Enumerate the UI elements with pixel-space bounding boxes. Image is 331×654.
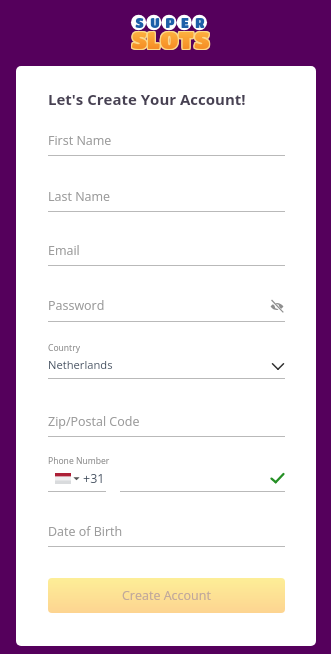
staticText: Email — [48, 242, 80, 259]
staticText: Country — [48, 342, 81, 354]
staticText: SLOTS — [131, 25, 210, 52]
staticText: P — [165, 15, 175, 30]
staticText: First Name — [48, 132, 112, 149]
staticText: Zip/Postal Code — [48, 413, 140, 430]
staticText: SLOTS — [132, 27, 211, 54]
staticText: SLOTS — [130, 25, 209, 52]
button[interactable]: Email — [48, 240, 285, 266]
staticText: SLOTS — [132, 26, 211, 53]
button[interactable]: Create Account — [48, 578, 285, 613]
staticText: SLOTS — [131, 26, 210, 53]
staticText: R — [195, 15, 205, 30]
staticText: Let's Create Your Account! — [48, 89, 246, 109]
button[interactable]: Country — [48, 342, 285, 379]
staticText: Netherlands — [48, 357, 113, 372]
staticText: S — [135, 15, 144, 30]
staticText: SLOTS — [130, 27, 209, 54]
staticText: SLOTS — [130, 26, 209, 53]
button[interactable]: First Name — [48, 130, 285, 156]
button[interactable]: Last Name — [48, 186, 285, 212]
staticText: U — [150, 15, 160, 30]
staticText: +31 — [83, 470, 105, 487]
staticText: Date of Birth — [48, 523, 123, 540]
other: Show password — [270, 300, 284, 312]
button[interactable]: Date of Birth — [48, 521, 285, 547]
staticText: SLOTS — [131, 27, 210, 54]
staticText: SLOTS — [132, 25, 211, 52]
staticText: E — [181, 15, 189, 30]
staticText: Create Account — [122, 587, 211, 604]
button[interactable]: Password — [48, 294, 285, 322]
button[interactable]: Zip/Postal Code — [48, 411, 285, 437]
staticText: Phone Number — [48, 455, 110, 467]
staticText: Last Name — [48, 188, 111, 205]
other: Select country — [272, 363, 284, 370]
button[interactable]: +31 — [48, 469, 106, 487]
staticText: Password — [48, 297, 105, 314]
